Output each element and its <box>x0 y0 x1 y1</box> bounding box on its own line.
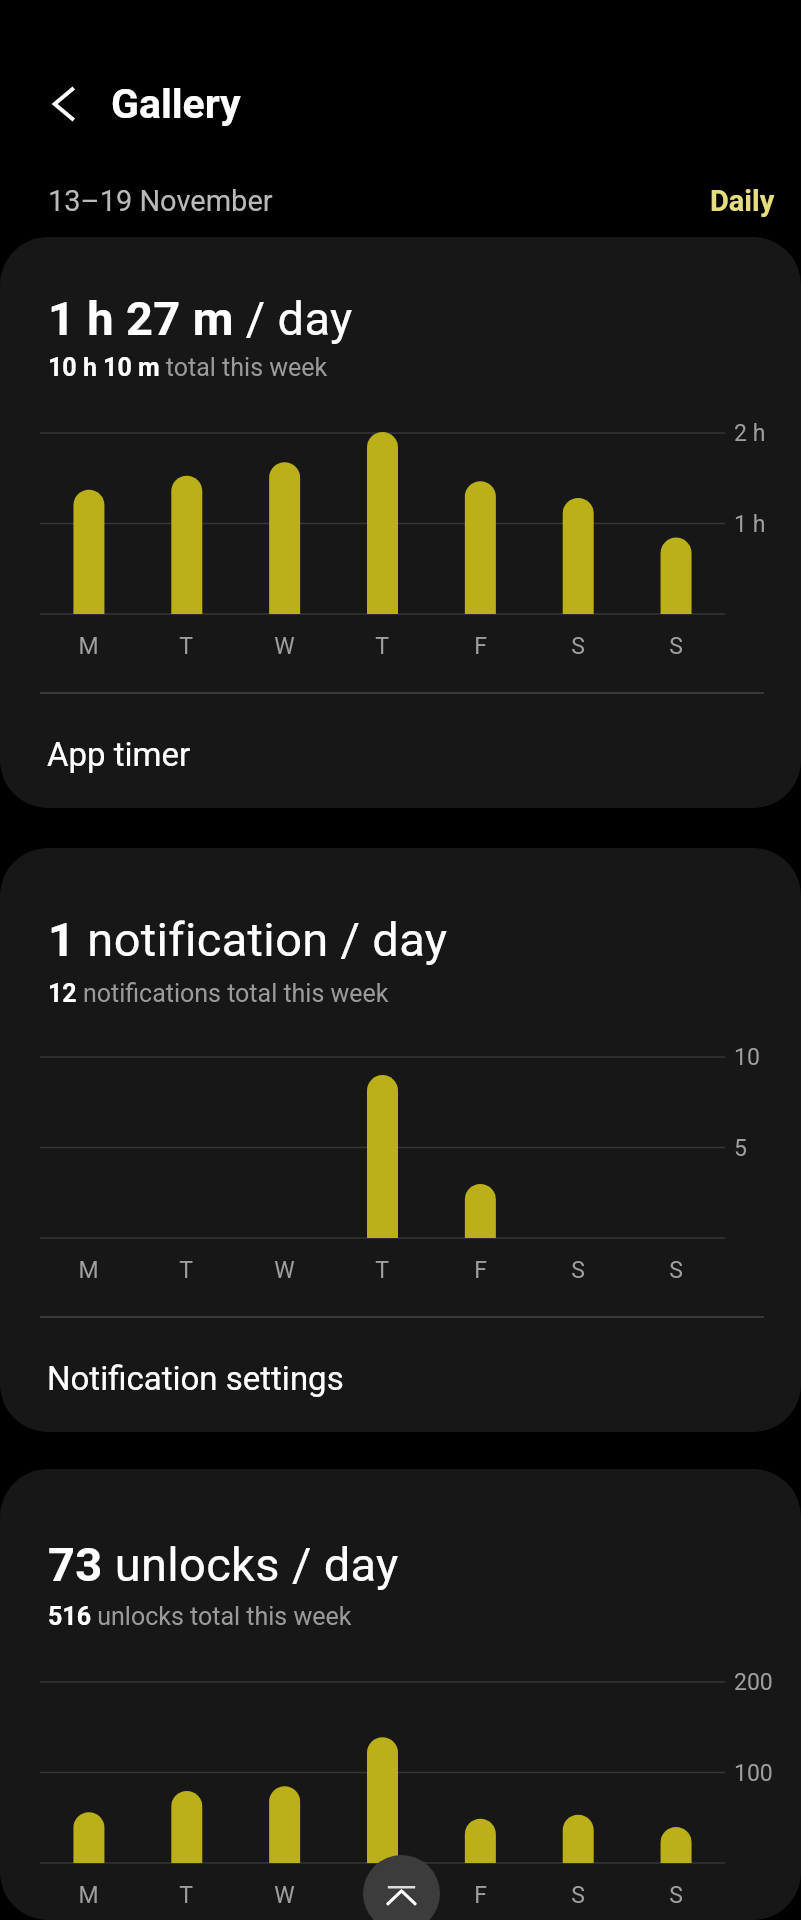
button[interactable]: App timer <box>0 694 801 808</box>
staticText: 13–19 November <box>48 184 273 218</box>
staticText: 5 <box>734 1135 747 1162</box>
staticText: F <box>474 1882 487 1909</box>
staticText: T <box>179 633 193 660</box>
staticText: 10 <box>734 1044 760 1071</box>
staticText: F <box>474 633 487 660</box>
staticText: S <box>571 1882 585 1909</box>
staticText: 100 <box>734 1760 773 1787</box>
staticText: T <box>179 1882 193 1909</box>
staticText: 1 h <box>734 511 766 538</box>
button[interactable]: Daily <box>710 184 775 218</box>
staticText: S <box>669 1882 683 1909</box>
staticText: S <box>571 1257 585 1284</box>
staticText: W <box>274 1257 295 1284</box>
staticText: M <box>78 633 99 660</box>
staticText: S <box>669 633 683 660</box>
staticText: 2 h <box>734 420 766 447</box>
staticText: App timer <box>47 735 191 774</box>
staticText: Notification settings <box>47 1359 344 1398</box>
staticText: 1 notification / day <box>48 912 448 967</box>
button[interactable]: 1 h 27 m / day <box>0 237 801 808</box>
staticText: 200 <box>734 1669 773 1696</box>
staticText: T <box>375 1257 389 1284</box>
button[interactable]: Back <box>31 72 95 136</box>
staticText: M <box>78 1257 99 1284</box>
button[interactable]: 73 unlocks / day <box>0 1469 801 1920</box>
staticText: T <box>375 1882 389 1909</box>
staticText: W <box>274 633 295 660</box>
staticText: 1 h 27 m / day <box>48 291 353 346</box>
staticText: 10 h 10 m total this week <box>48 353 328 382</box>
staticText: 516 unlocks total this week <box>48 1602 352 1631</box>
staticText: Daily <box>710 184 775 218</box>
staticText: W <box>274 1882 295 1909</box>
staticText: T <box>179 1257 193 1284</box>
staticText: S <box>669 1257 683 1284</box>
staticText: T <box>375 633 389 660</box>
staticText: S <box>571 633 585 660</box>
button[interactable]: Scroll to top <box>363 1855 440 1920</box>
staticText: Gallery <box>111 80 241 128</box>
staticText: 73 unlocks / day <box>48 1537 399 1592</box>
button[interactable]: Notification settings <box>0 1318 801 1432</box>
staticText: F <box>474 1257 487 1284</box>
staticText: M <box>78 1882 99 1909</box>
staticText: 12 notifications total this week <box>48 979 389 1008</box>
button[interactable]: 1 notification / day <box>0 848 801 1432</box>
